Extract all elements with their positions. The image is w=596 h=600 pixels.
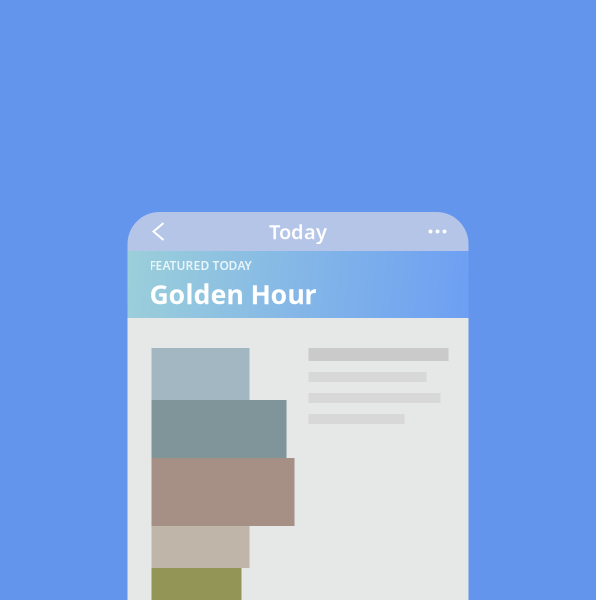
button[interactable]: Back xyxy=(141,216,175,246)
staticText: FEATURED TODAY xyxy=(149,257,251,273)
button[interactable]: More xyxy=(420,216,454,246)
staticText: Today xyxy=(269,218,327,245)
staticText: Golden Hour xyxy=(149,276,316,312)
